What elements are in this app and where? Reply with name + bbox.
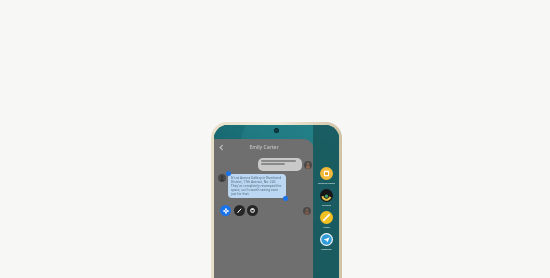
- button[interactable]: Chrome: [319, 189, 334, 206]
- button[interactable]: Notes: [319, 211, 334, 228]
- button[interactable]: Edit: [234, 205, 245, 216]
- button[interactable]: Contact avatar: [303, 207, 311, 215]
- staticText: It's at Aurora Gallery in Riverbend Dist…: [231, 176, 283, 196]
- button[interactable]: It's at Aurora Gallery in Riverbend Dist…: [231, 176, 283, 196]
- button[interactable]: Contact avatar: [304, 161, 312, 169]
- staticText: Chrome: [322, 203, 331, 206]
- button[interactable]: Recently Saved: [317, 167, 336, 184]
- staticText: Recently Saved: [318, 181, 335, 184]
- button[interactable]: Circle to Search: [220, 205, 231, 216]
- staticText: Telegram: [321, 247, 332, 250]
- staticText: Notes: [323, 225, 330, 228]
- button[interactable]: Telegram: [319, 233, 334, 250]
- button[interactable]: Save: [247, 205, 258, 216]
- button[interactable]: Contact avatar: [218, 174, 226, 182]
- staticText: Emily Carter: [249, 144, 279, 151]
- button[interactable]: Back: [216, 142, 227, 153]
- button[interactable]: [261, 160, 299, 169]
